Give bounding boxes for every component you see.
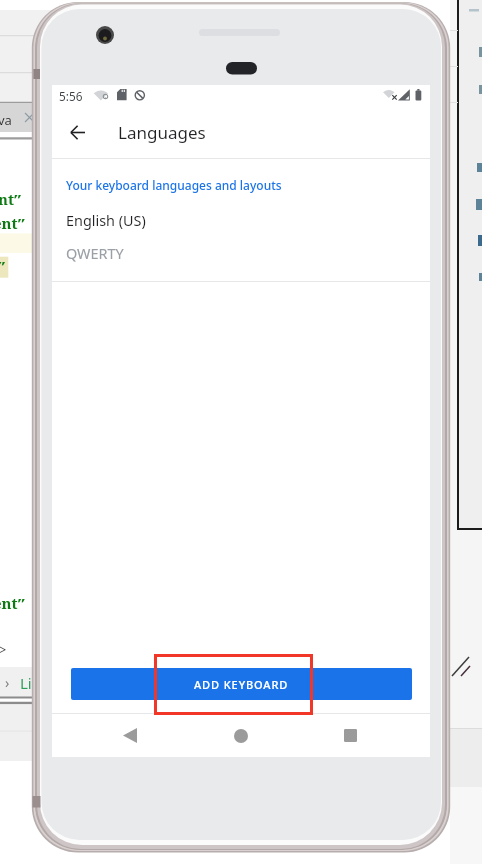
staticText: va — [0, 111, 12, 129]
staticText: ent″ — [0, 213, 26, 233]
button[interactable]: Back — [99, 714, 161, 757]
staticText: 5:56 — [59, 88, 83, 104]
staticText: › — [5, 673, 10, 692]
staticText: /> — [0, 639, 7, 659]
staticText: ″ — [0, 256, 6, 276]
staticText: ADD KEYBOARD — [194, 677, 289, 692]
button[interactable]: Navigate up — [52, 108, 100, 156]
button[interactable]: English (US) — [52, 193, 430, 272]
staticText: Your keyboard languages and layouts — [66, 177, 282, 193]
staticText: nt″ — [0, 189, 22, 209]
staticText: ent″ — [0, 593, 26, 613]
staticText: QWERTY — [66, 244, 124, 264]
button[interactable]: ADD KEYBOARD — [71, 668, 412, 700]
staticText: English (US) — [66, 211, 146, 231]
staticText: Li — [20, 673, 32, 693]
button[interactable]: Home — [210, 714, 272, 757]
staticText: Languages — [118, 121, 206, 144]
button[interactable]: Recent apps — [319, 714, 381, 757]
